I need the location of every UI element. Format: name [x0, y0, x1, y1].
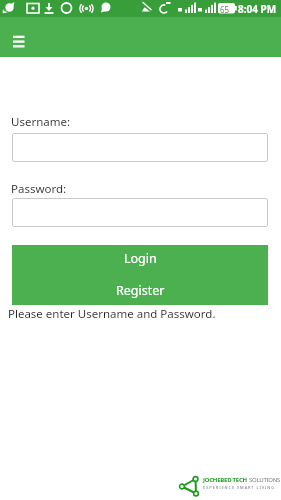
staticText: EXPERIENCE SMART LIVING	[203, 485, 276, 490]
button[interactable]	[0, 17, 44, 57]
staticText: Login	[124, 250, 157, 267]
button[interactable]: Login	[12, 245, 268, 275]
staticText: SOLUTIONS	[249, 476, 281, 484]
staticText: 8:04 PM	[238, 2, 277, 16]
staticText: 65	[220, 4, 230, 15]
staticText: Username:	[11, 114, 71, 130]
staticText: Password:	[11, 181, 67, 197]
staticText: JOCHEBED TECH	[203, 476, 249, 484]
staticText: Register	[116, 282, 165, 299]
staticText: Please enter Username and Password.	[8, 306, 216, 322]
button[interactable]	[12, 133, 268, 162]
button[interactable]: Register	[12, 275, 268, 305]
button[interactable]	[12, 198, 268, 227]
